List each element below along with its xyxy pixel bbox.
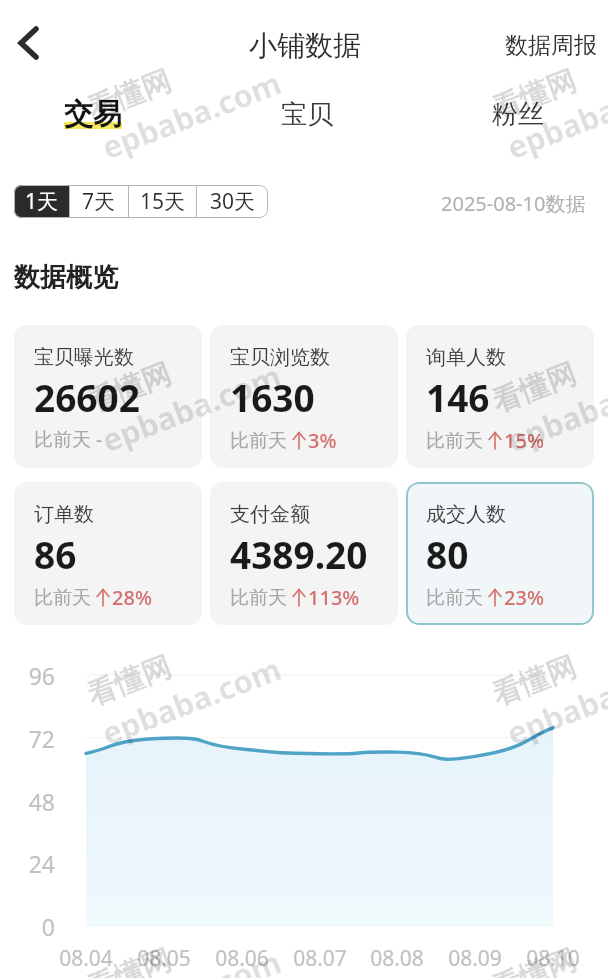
staticText: 看懂网 <box>487 941 581 978</box>
staticText: 3% <box>308 427 337 454</box>
staticText: 96 <box>0 660 55 691</box>
staticText: epbaba.com <box>96 647 287 754</box>
staticText: epbaba.com <box>501 61 608 168</box>
button[interactable]: 数据周报 <box>489 20 608 71</box>
button[interactable]: Back <box>0 16 56 70</box>
staticText: 看懂网 <box>82 355 176 421</box>
button[interactable]: 询单人数 <box>406 325 594 468</box>
button[interactable]: 1天 <box>14 185 69 218</box>
staticText: 26602 <box>34 372 140 422</box>
staticText: 比前天 <box>426 586 483 610</box>
staticText: 30天 <box>210 187 256 216</box>
staticText: 2025-08-10数据 <box>441 190 586 217</box>
button[interactable]: 支付金额 <box>210 482 398 625</box>
staticText: 比前天 <box>34 428 91 452</box>
staticText: 28% <box>112 584 152 611</box>
staticText: 成交人数 <box>426 502 506 527</box>
staticText: 宝贝 <box>281 98 333 131</box>
staticText: 4389.20 <box>230 529 368 579</box>
staticText: 113% <box>308 584 360 611</box>
staticText: 宝贝曝光数 <box>34 345 134 370</box>
staticText: 数据概览 <box>14 261 118 294</box>
button[interactable]: 订单数 <box>14 482 202 625</box>
staticText: epbaba.com <box>501 647 608 754</box>
staticText: 看懂网 <box>82 941 176 978</box>
staticText: 粉丝 <box>492 98 544 131</box>
staticText: 08.09 <box>430 944 520 973</box>
staticText: epbaba.com <box>96 354 287 461</box>
staticText: 24 <box>0 848 55 879</box>
staticText: 7天 <box>82 187 116 216</box>
staticText: 比前天 <box>426 429 483 453</box>
staticText: 小铺数据 <box>249 28 361 63</box>
staticText: 数据周报 <box>505 31 597 60</box>
staticText: 08.10 <box>508 944 598 973</box>
button[interactable]: 宝贝浏览数 <box>210 325 398 468</box>
staticText: 08.06 <box>197 944 287 973</box>
staticText: 看懂网 <box>487 355 581 421</box>
staticText: 23% <box>504 584 544 611</box>
staticText: - <box>96 427 103 453</box>
staticText: 08.07 <box>275 944 365 973</box>
staticText: 支付金额 <box>230 502 310 527</box>
button[interactable]: 交易 <box>44 84 142 145</box>
staticText: 48 <box>0 786 55 817</box>
staticText: 15天 <box>140 187 186 216</box>
staticText: 订单数 <box>34 502 94 527</box>
staticText: 08.08 <box>352 944 442 973</box>
button[interactable]: 成交人数 <box>406 482 594 625</box>
staticText: 08.05 <box>119 944 209 973</box>
staticText: 比前天 <box>34 586 91 610</box>
staticText: 80 <box>426 529 469 579</box>
staticText: 看懂网 <box>487 62 581 128</box>
staticText: 15% <box>504 427 544 454</box>
button[interactable]: 7天 <box>70 185 128 218</box>
staticText: 看懂网 <box>487 648 581 714</box>
staticText: 146 <box>426 372 490 422</box>
staticText: 询单人数 <box>426 345 506 370</box>
staticText: 1630 <box>230 372 315 422</box>
staticText: 比前天 <box>230 586 287 610</box>
staticText: epbaba.com <box>96 940 287 978</box>
button[interactable]: 30天 <box>197 185 268 218</box>
staticText: 看懂网 <box>82 62 176 128</box>
staticText: 86 <box>34 529 77 579</box>
staticText: 看懂网 <box>82 648 176 714</box>
button[interactable]: 宝贝 <box>261 86 353 143</box>
staticText: 宝贝浏览数 <box>230 345 330 370</box>
button[interactable]: 宝贝曝光数 <box>14 325 202 468</box>
staticText: epbaba.com <box>501 354 608 461</box>
staticText: 72 <box>0 723 55 754</box>
staticText: 1天 <box>25 187 59 216</box>
staticText: 比前天 <box>230 429 287 453</box>
staticText: epbaba.com <box>96 61 287 168</box>
staticText: 0 <box>0 911 55 942</box>
staticText: epbaba.com <box>501 940 608 978</box>
button[interactable]: 粉丝 <box>472 86 564 143</box>
button[interactable]: 15天 <box>129 185 196 218</box>
staticText: 08.04 <box>41 944 131 973</box>
staticText: 交易 <box>64 96 122 133</box>
